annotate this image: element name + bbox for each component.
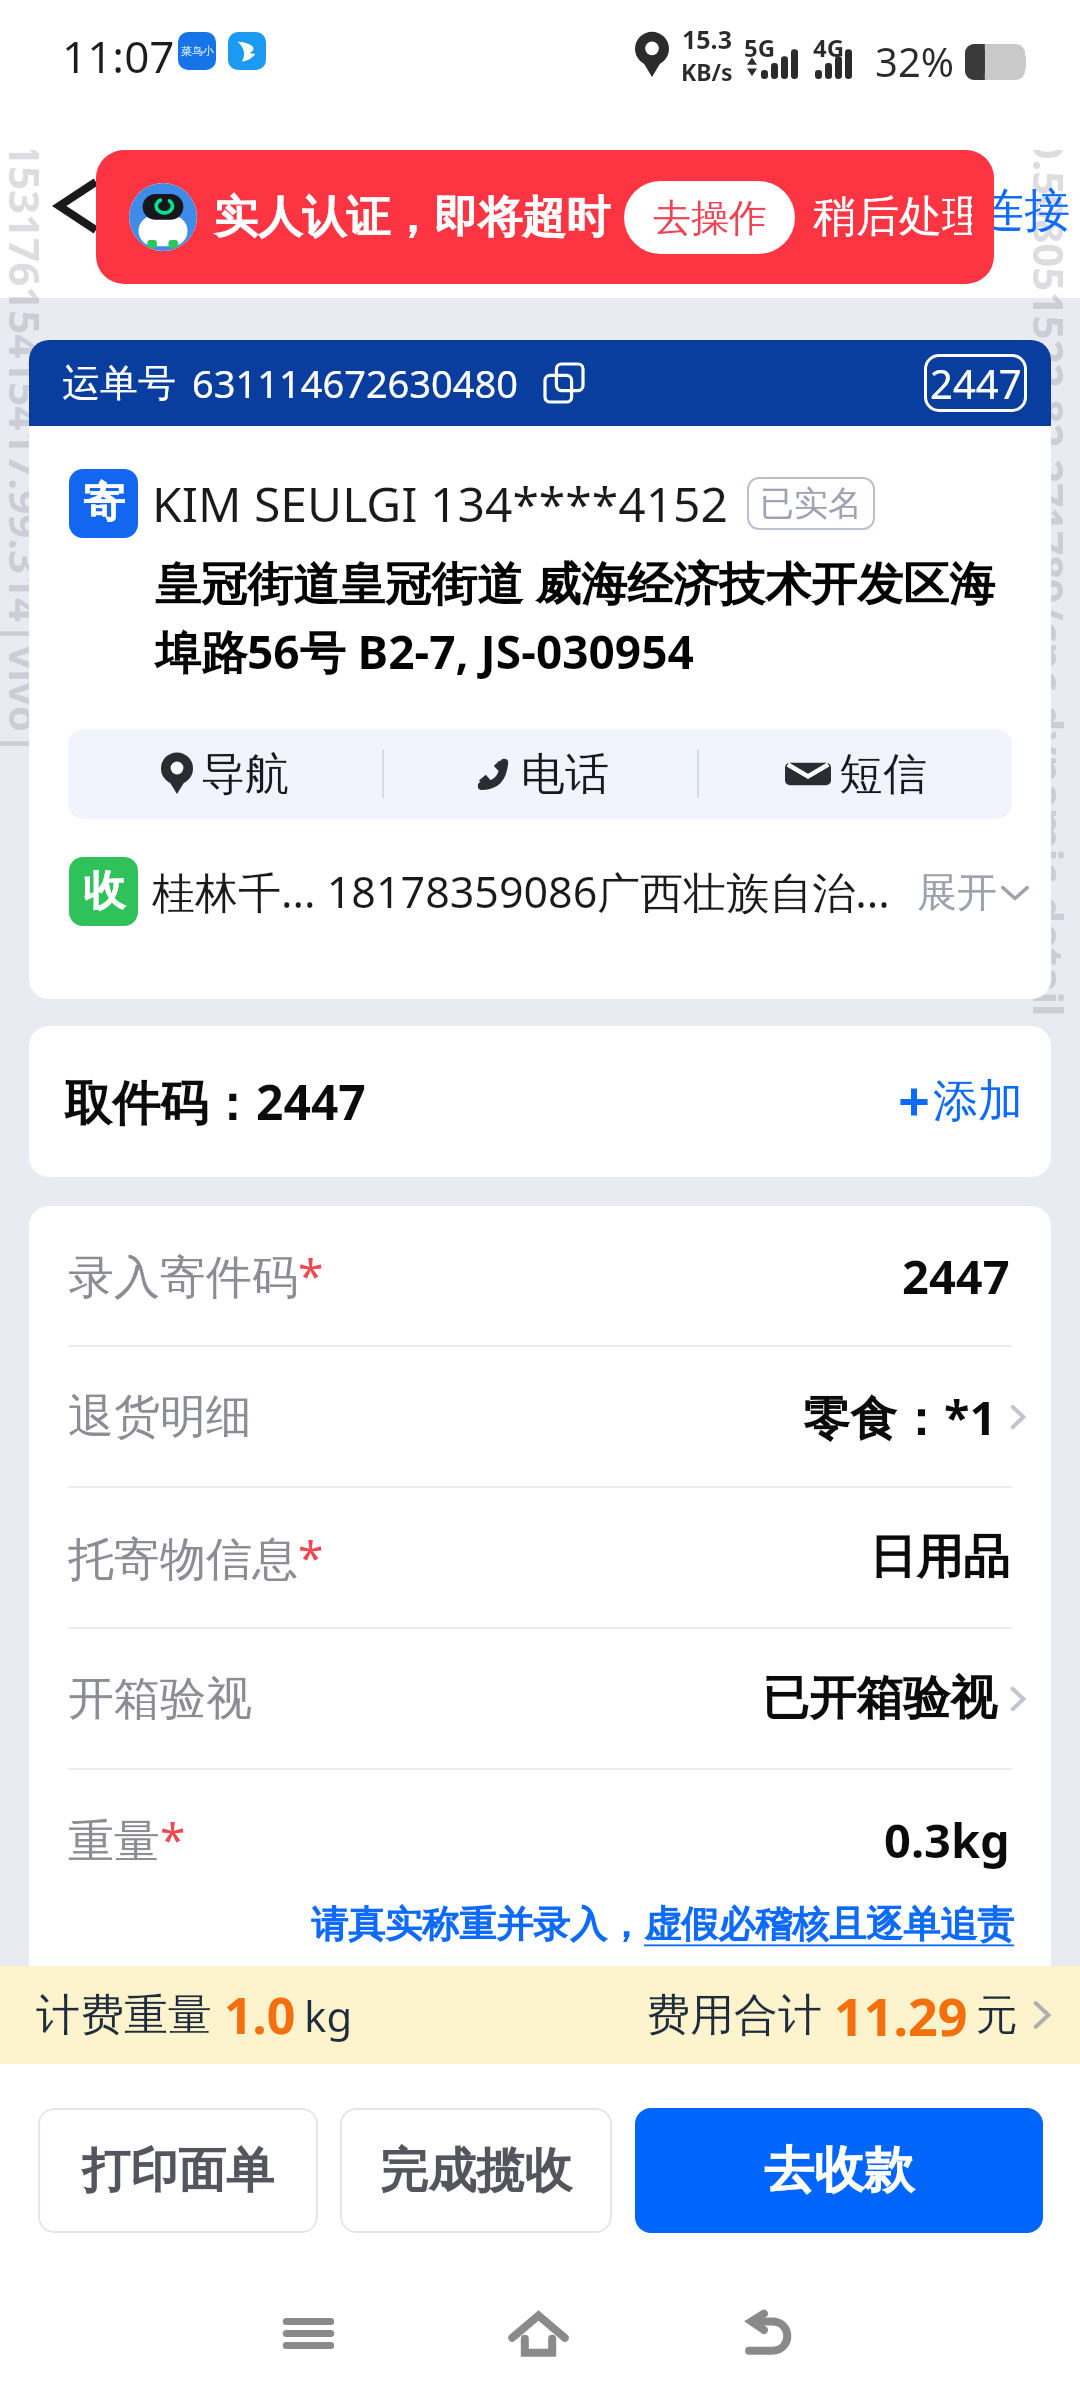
staticText: 取件码：2447 — [64, 1069, 366, 1135]
button[interactable]: 开箱验视 — [29, 1629, 1051, 1768]
staticText: 5G — [744, 31, 776, 64]
staticText: 重量* — [68, 1808, 186, 1871]
staticText: 1.0 — [224, 1981, 296, 2049]
staticText: 录入寄件码* — [68, 1244, 324, 1307]
button[interactable]: 返回 — [52, 180, 104, 232]
staticText: KB/s — [681, 56, 733, 87]
staticText: 2447 — [930, 356, 1022, 410]
staticText: 0.3kg — [884, 1808, 1010, 1872]
button[interactable]: 实人认证，即将超时 — [96, 150, 994, 284]
button[interactable]: 计费重量 — [0, 1966, 1080, 2064]
staticText: 去收款 — [764, 2139, 914, 2202]
staticText: 退货明细 — [68, 1388, 252, 1446]
staticText: 连接 — [978, 182, 1070, 240]
button[interactable]: Recent apps — [271, 2273, 345, 2393]
staticText: 电话 — [521, 747, 609, 802]
staticText: 2447 — [902, 1244, 1010, 1308]
staticText: 展开 — [917, 867, 997, 917]
staticText: 打印面单 — [82, 2141, 274, 2201]
button[interactable]: Back — [731, 2273, 805, 2393]
staticText: 32% — [875, 34, 954, 88]
button[interactable]: 复制运单号 — [541, 360, 587, 406]
staticText: 日用品 — [869, 1528, 1010, 1587]
button[interactable]: 添加 — [897, 1073, 1023, 1130]
staticText: 导航 — [201, 747, 289, 802]
staticText: 桂林千... 18178359086广西壮族自治... — [152, 862, 917, 921]
staticText: 15.3 — [682, 22, 732, 56]
button[interactable]: 重量* — [29, 1770, 1051, 1909]
button[interactable]: 短信 — [699, 729, 1012, 819]
staticText: 11.29 — [834, 1980, 968, 2051]
staticText: KIM SEULGI 134****4152 — [152, 471, 729, 536]
button[interactable]: 完成揽收 — [340, 2108, 612, 2233]
staticText: 开箱验视 — [68, 1670, 252, 1728]
staticText: 零食：*1 — [803, 1385, 997, 1449]
staticText: 请真实称重并录入，虚假必稽核且逐单追责 — [29, 1901, 1014, 1948]
staticText: 去操作 — [653, 194, 767, 242]
staticText: 收 — [83, 865, 125, 918]
staticText: 皇冠街道皇冠街道 威海经济技术开发区海埠路56号 B2-7, JS-030954 — [155, 551, 1025, 682]
button[interactable]: 录入寄件码* — [29, 1206, 1051, 1345]
staticText: 元 — [976, 1989, 1018, 2042]
button[interactable]: Home — [501, 2273, 575, 2393]
button[interactable]: 导航 — [68, 729, 382, 819]
button[interactable]: 电话 — [384, 729, 697, 819]
button[interactable]: 去操作 — [624, 181, 795, 254]
button[interactable]: 稍后处理 — [813, 190, 972, 244]
staticText: 已实名 — [760, 482, 862, 525]
staticText: 631114672630480 — [192, 357, 519, 409]
button[interactable]: 退货明细 — [29, 1347, 1051, 1486]
staticText: 运单号 — [62, 359, 176, 407]
staticText: 实人认证，即将超时 — [214, 190, 610, 245]
staticText: 添加 — [933, 1073, 1023, 1130]
staticText: 菜鸟小 — [181, 44, 214, 58]
staticText: 已开箱验视 — [762, 1669, 997, 1728]
staticText: 托寄物信息* — [68, 1526, 324, 1589]
staticText: 11:07 — [62, 26, 175, 86]
staticText: 4G — [813, 31, 845, 64]
staticText: 寄 — [83, 477, 125, 530]
button[interactable]: 收 — [69, 857, 1033, 926]
button[interactable]: 去收款 — [635, 2108, 1043, 2233]
staticText: 计费重量 — [36, 1988, 212, 2043]
button[interactable]: 托寄物信息* — [29, 1488, 1051, 1627]
staticText: kg — [304, 1987, 353, 2044]
staticText: 短信 — [839, 747, 927, 802]
button[interactable]: 打印面单 — [38, 2108, 318, 2233]
staticText: 费用合计 — [646, 1988, 822, 2043]
staticText: 完成揽收 — [380, 2141, 572, 2201]
